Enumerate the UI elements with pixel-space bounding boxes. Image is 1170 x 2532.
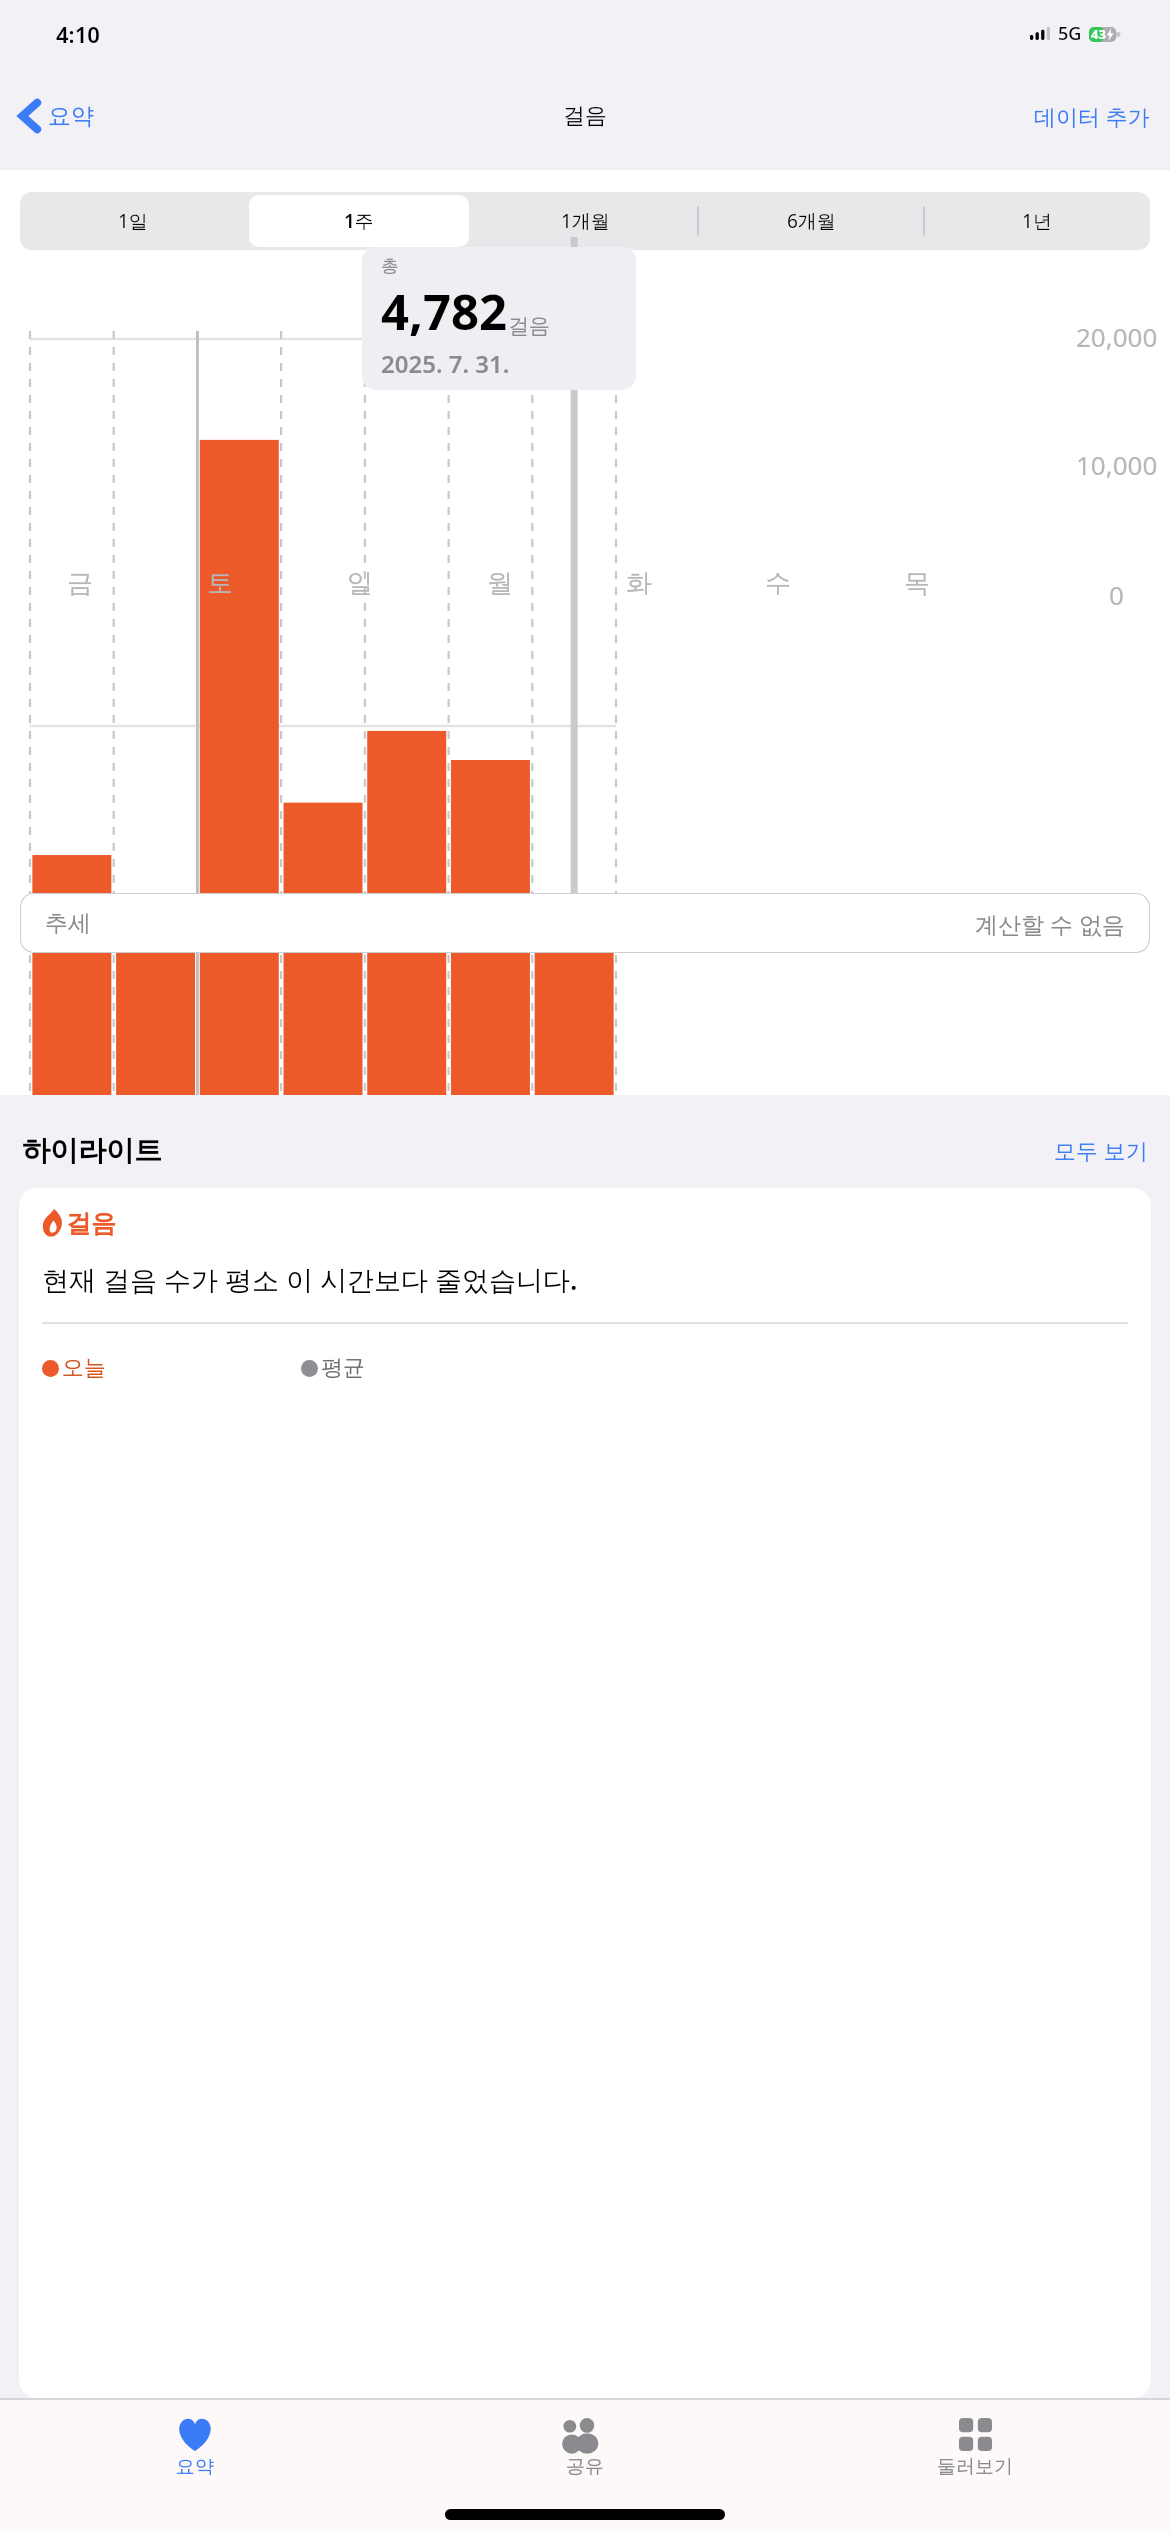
staticText: 1년 [1022,208,1052,234]
staticText: 토 [207,567,233,600]
button[interactable]: 걸음 [19,1188,1151,2398]
staticText: 6개월 [787,208,836,234]
staticText: 추세 [45,909,91,938]
staticText: 20,000 [1076,319,1158,354]
staticText: 오늘 [62,1354,106,1382]
staticText: 4,782 [381,278,508,345]
staticText: 5G [1058,21,1082,46]
staticText: 월 [487,567,513,600]
staticText: 계산할 수 없음 [975,908,1125,939]
staticText: 둘러보기 [937,2455,1013,2479]
staticText: 요약 [48,102,94,131]
button[interactable]: 요약 [0,2400,390,2496]
staticText: 공유 [566,2455,604,2479]
staticText: 걸음 [508,313,550,339]
button[interactable]: 모두 보기 [1054,1135,1148,1165]
staticText: 2025. 7. 31. [381,347,510,380]
staticText: 걸음 [563,102,607,130]
staticText: 평균 [321,1354,365,1382]
staticText: 금 [67,567,93,600]
staticText: 하이라이트 [22,1133,162,1168]
staticText: 걸음 [66,1208,116,1239]
staticText: 1일 [118,208,148,234]
staticText: 43 [1091,25,1106,43]
staticText: 10,000 [1076,447,1158,482]
staticText: 수 [765,567,791,600]
button[interactable]: 6개월 [701,195,921,247]
staticText: 화 [626,567,652,600]
button[interactable]: 추세 [20,893,1150,953]
button[interactable]: 1일 [23,195,243,247]
button[interactable]: 1년 [927,195,1147,247]
staticText: 4:10 [56,19,100,49]
button[interactable]: 둘러보기 [780,2400,1170,2496]
staticText: 총 [381,255,399,278]
staticText: 1개월 [561,208,610,234]
button[interactable]: 공유 [390,2400,780,2496]
staticText: 목 [904,567,930,600]
button[interactable]: 1개월 [475,195,695,247]
staticText: 현재 걸음 수가 평소 이 시간보다 줄었습니다. [42,1261,578,1298]
button[interactable]: 1주 [249,195,469,247]
button[interactable]: 요약 [18,98,94,134]
staticText: 일 [347,567,373,600]
staticText: 1주 [344,208,374,234]
staticText: 요약 [176,2455,214,2479]
staticText: 0 [1109,577,1124,612]
button[interactable]: 데이터 추가 [1034,101,1150,131]
